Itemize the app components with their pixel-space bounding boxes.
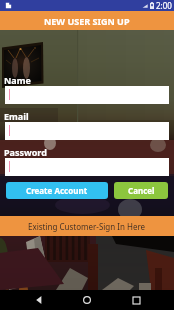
button[interactable]: Create Account	[6, 182, 108, 199]
staticText: Name	[4, 74, 31, 86]
button[interactable]	[5, 86, 169, 104]
staticText: 2:00	[156, 0, 172, 11]
staticText: Password	[4, 146, 47, 158]
button[interactable]: Home	[77, 290, 97, 310]
staticText: Email	[4, 110, 29, 122]
button[interactable]: Recents	[126, 290, 146, 310]
button[interactable]	[5, 158, 169, 176]
button[interactable]	[5, 122, 169, 140]
button[interactable]: Existing Customer-Sign In Here	[0, 216, 174, 236]
button[interactable]: Cancel	[114, 182, 168, 199]
staticText: Cancel	[128, 185, 155, 196]
staticText: NEW USER SIGN UP	[44, 15, 130, 27]
staticText: Create Account	[26, 185, 88, 196]
staticText: Existing Customer-Sign In Here	[28, 221, 146, 232]
button[interactable]: Back	[29, 290, 49, 310]
